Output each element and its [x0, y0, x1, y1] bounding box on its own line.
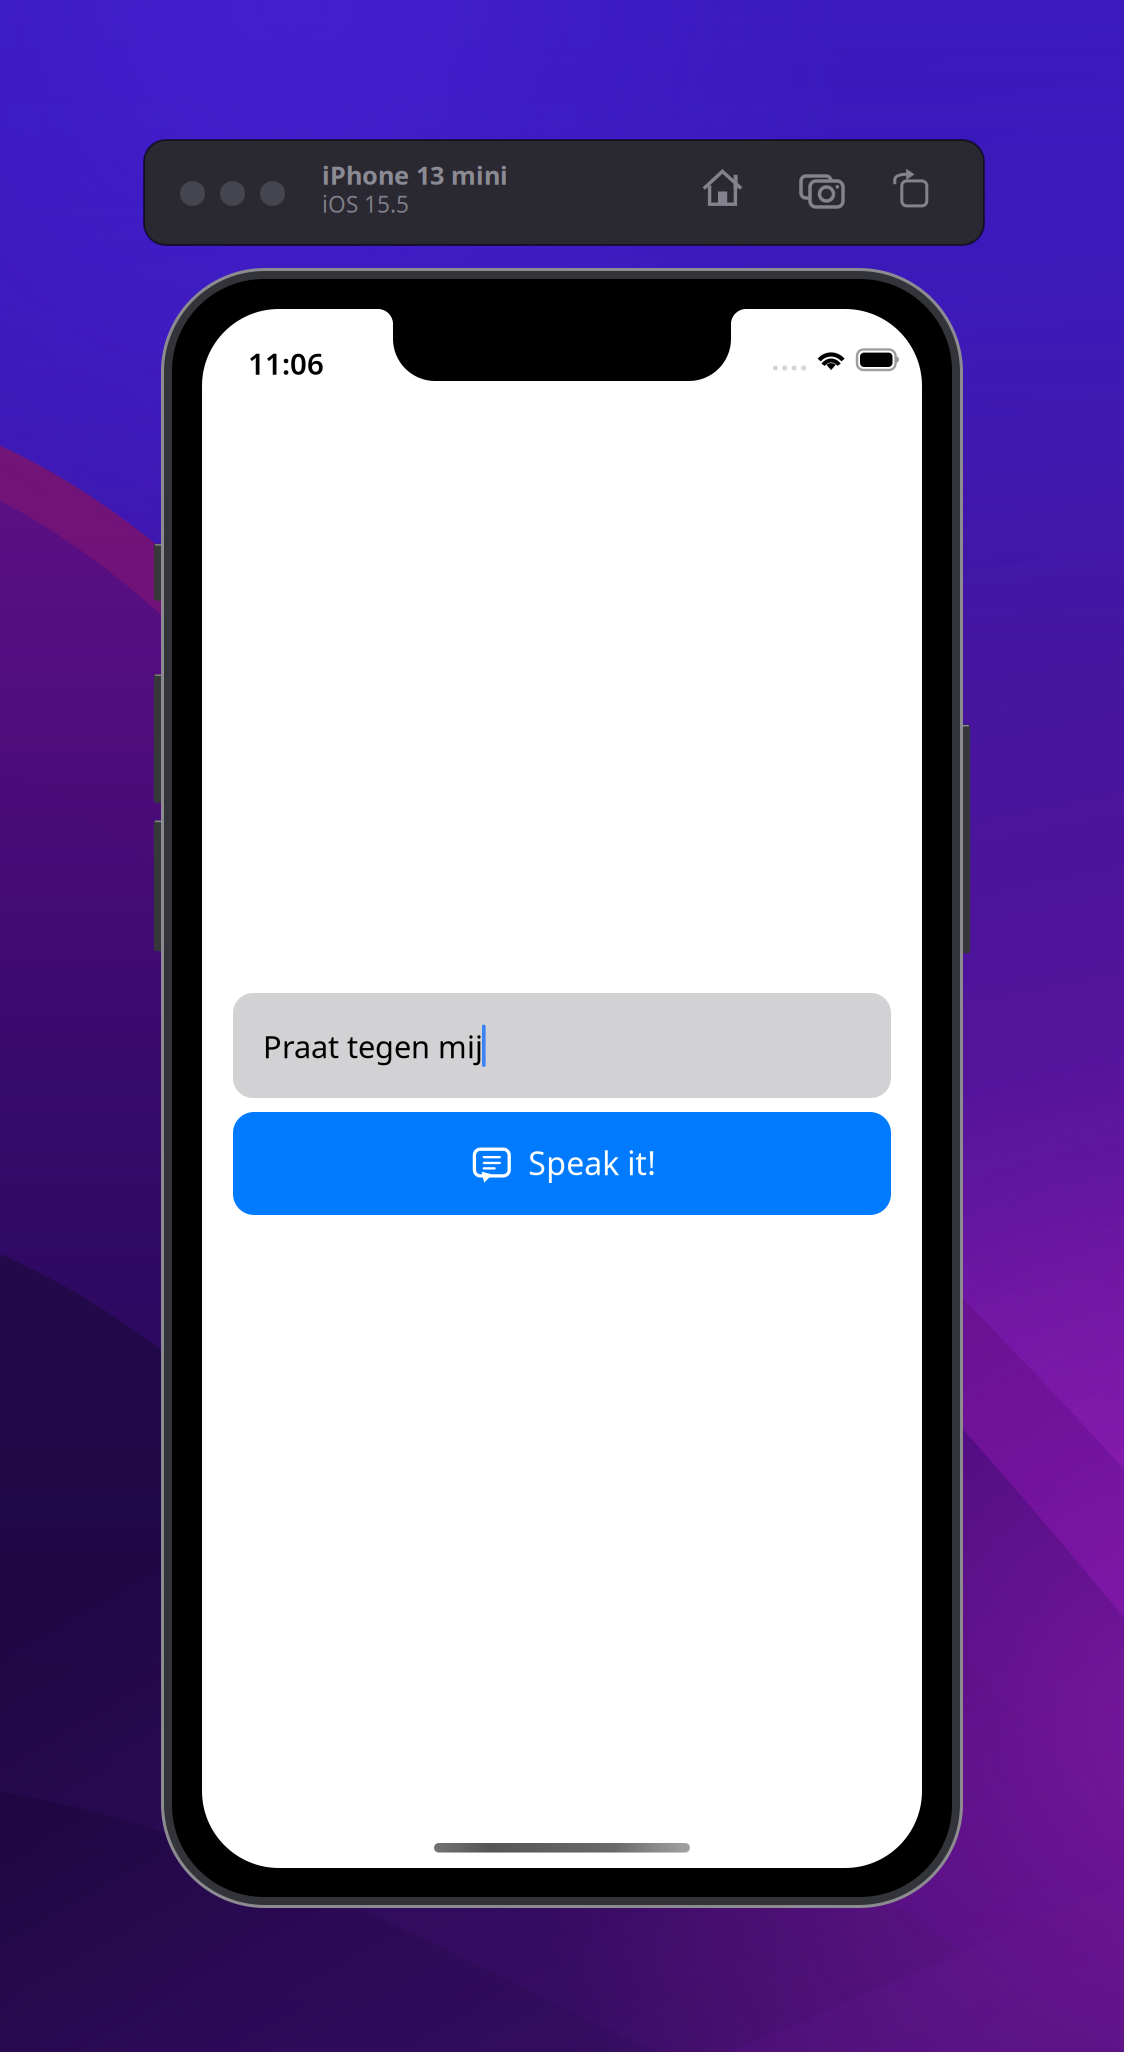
- button[interactable]: Close: [180, 181, 205, 206]
- staticText: iPhone 13 mini: [322, 158, 508, 192]
- button[interactable]: Speak it!: [233, 1112, 891, 1215]
- button[interactable]: Zoom: [260, 181, 285, 206]
- button[interactable]: Rotate: [892, 170, 930, 208]
- button[interactable]: Screenshot: [800, 172, 845, 209]
- button[interactable]: Minimise: [220, 181, 245, 206]
- staticText: Speak it!: [528, 1142, 656, 1184]
- staticText: Praat tegen mij: [263, 1026, 483, 1067]
- button[interactable]: Text to speak: [233, 993, 891, 1098]
- staticText: iOS 15.5: [322, 189, 409, 219]
- button[interactable]: Home: [703, 171, 742, 206]
- staticText: 11:06: [248, 344, 324, 383]
